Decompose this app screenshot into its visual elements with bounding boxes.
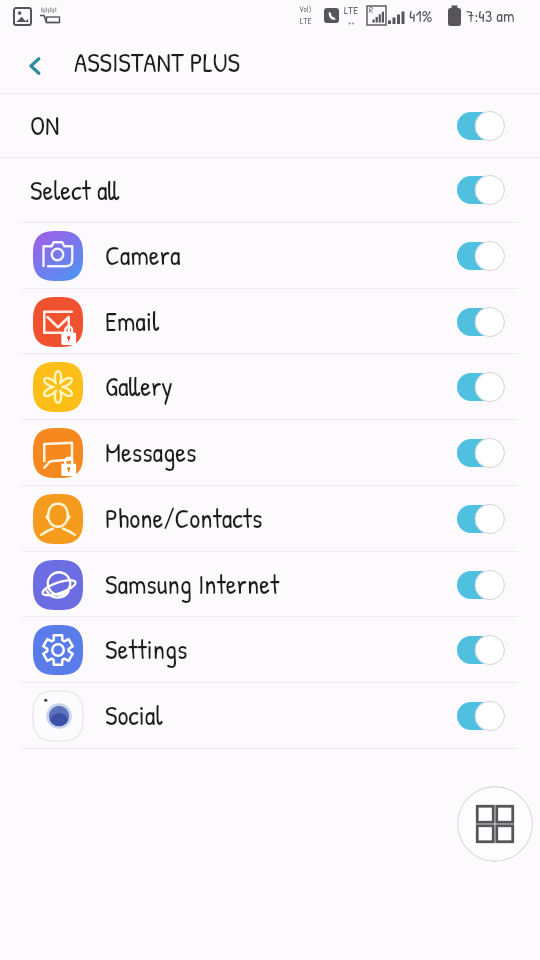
button[interactable]: Samsung Internet xyxy=(0,552,540,617)
button[interactable] xyxy=(452,305,504,339)
staticText: LTE xyxy=(300,15,312,27)
staticText: ASSISTANT PLUS xyxy=(74,44,240,81)
button[interactable] xyxy=(452,109,504,143)
button[interactable]: Back xyxy=(18,49,52,83)
button[interactable]: Social xyxy=(0,683,540,748)
button[interactable]: ON xyxy=(0,94,540,157)
button[interactable]: Gallery xyxy=(0,354,540,419)
button[interactable] xyxy=(452,633,504,667)
staticText: Gallery xyxy=(105,368,452,405)
button[interactable] xyxy=(452,370,504,404)
button[interactable] xyxy=(452,173,504,207)
staticText: Select all xyxy=(30,172,452,209)
button[interactable] xyxy=(452,436,504,470)
button[interactable] xyxy=(452,699,504,733)
staticText: Messages xyxy=(105,434,452,471)
staticText: Camera xyxy=(105,237,452,274)
staticText: 7:43 am xyxy=(466,4,515,27)
button[interactable]: Messages xyxy=(0,420,540,485)
button[interactable]: Phone/Contacts xyxy=(0,486,540,551)
staticText: Settings xyxy=(105,631,452,668)
button[interactable] xyxy=(452,502,504,536)
staticText: ON xyxy=(30,107,452,144)
button[interactable] xyxy=(452,239,504,273)
button[interactable]: Select all xyxy=(0,158,540,222)
staticText: Samsung Internet xyxy=(105,566,452,603)
staticText: 41% xyxy=(409,4,433,27)
button[interactable]: Camera xyxy=(0,223,540,288)
button[interactable]: Email xyxy=(0,289,540,354)
staticText: LTE xyxy=(344,3,359,18)
staticText: Email xyxy=(105,303,452,340)
staticText: R xyxy=(369,4,374,16)
button[interactable]: Apps grid xyxy=(457,786,533,862)
staticText: Phone/Contacts xyxy=(105,500,452,537)
staticText: ++ xyxy=(348,18,355,27)
staticText: Social xyxy=(105,697,452,734)
button[interactable] xyxy=(452,568,504,602)
staticText: VoI) xyxy=(299,4,312,15)
button[interactable]: Settings xyxy=(0,617,540,682)
